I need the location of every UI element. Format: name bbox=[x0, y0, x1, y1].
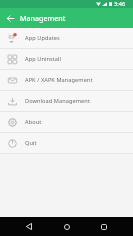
staticText: About bbox=[25, 118, 42, 126]
button[interactable]: APK / XAPK Management bbox=[0, 70, 133, 90]
button[interactable]: Download Management bbox=[0, 91, 133, 111]
button[interactable]: App Uninstall bbox=[0, 49, 133, 69]
staticText: APK / XAPK Management bbox=[25, 76, 93, 84]
button[interactable]: Home bbox=[48, 217, 85, 236]
staticText: App Updates bbox=[25, 34, 60, 42]
button[interactable]: App Updates bbox=[0, 28, 133, 48]
button[interactable]: Back bbox=[0, 217, 48, 236]
staticText: 3:46 bbox=[114, 0, 126, 8]
staticText: Download Management bbox=[25, 97, 90, 105]
staticText: App Uninstall bbox=[25, 55, 62, 63]
staticText: Management bbox=[20, 13, 66, 23]
button[interactable]: Back bbox=[0, 8, 20, 28]
staticText: Quit bbox=[25, 139, 37, 147]
button[interactable]: Quit bbox=[0, 133, 133, 153]
button[interactable]: About bbox=[0, 112, 133, 132]
button[interactable]: Recent apps bbox=[85, 217, 122, 236]
